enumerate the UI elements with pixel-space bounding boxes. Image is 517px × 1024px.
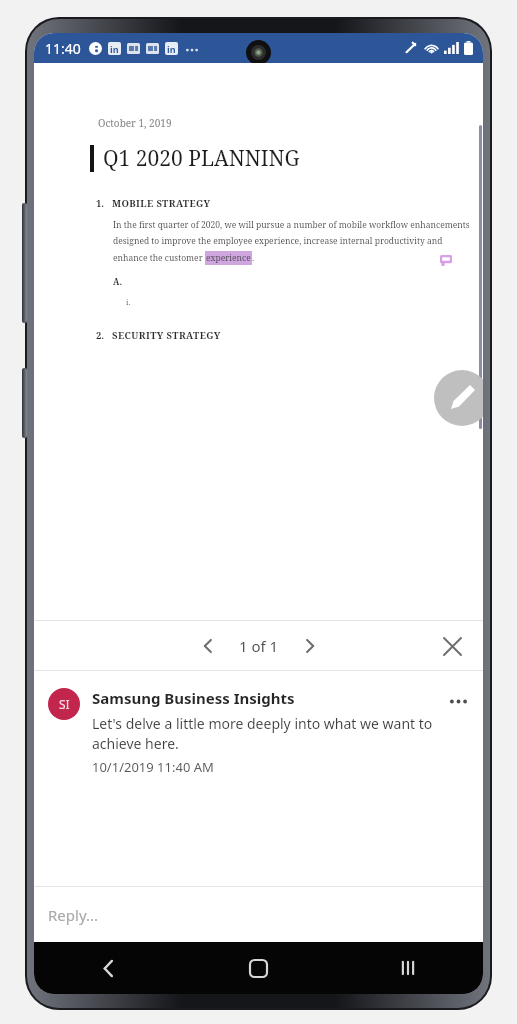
- staticText: enhance the customer: [113, 252, 205, 264]
- staticText: 2.: [96, 329, 105, 342]
- button[interactable]: Reply...: [34, 887, 483, 942]
- button[interactable]: Close comments: [433, 627, 471, 665]
- staticText: i.: [126, 297, 131, 307]
- button[interactable]: Recent apps: [333, 942, 483, 994]
- staticText: A.: [113, 276, 122, 288]
- staticText: Q1 2020 PLANNING: [103, 144, 300, 173]
- staticText: SECURITY STRATEGY: [112, 329, 221, 342]
- staticText: 1 of 1: [239, 636, 279, 656]
- staticText: Samsung Business Insights: [92, 688, 295, 708]
- button[interactable]: Previous comment: [189, 627, 227, 665]
- staticText: in: [110, 43, 119, 55]
- staticText: in: [167, 43, 176, 55]
- button[interactable]: Next comment: [291, 627, 329, 665]
- button[interactable]: More options: [445, 688, 471, 714]
- staticText: Let's delve a little more deeply into wh…: [92, 714, 445, 753]
- button[interactable]: Edit: [434, 370, 483, 426]
- staticText: experience: [206, 252, 251, 264]
- staticText: 1.: [96, 197, 105, 210]
- staticText: .: [252, 252, 255, 264]
- staticText: Reply...: [48, 905, 98, 925]
- button[interactable]: Home: [183, 942, 333, 994]
- button[interactable]: Comment: [440, 255, 452, 266]
- staticText: In the first quarter of 2020, we will pu…: [113, 219, 470, 231]
- staticText: MOBILE STRATEGY: [112, 197, 211, 210]
- staticText: October 1, 2019: [98, 116, 172, 130]
- staticText: 11:40: [45, 39, 81, 58]
- button[interactable]: Back: [34, 942, 183, 994]
- staticText: SI: [59, 696, 70, 712]
- staticText: 10/1/2019 11:40 AM: [92, 758, 214, 776]
- staticText: designed to improve the employee experie…: [113, 235, 443, 247]
